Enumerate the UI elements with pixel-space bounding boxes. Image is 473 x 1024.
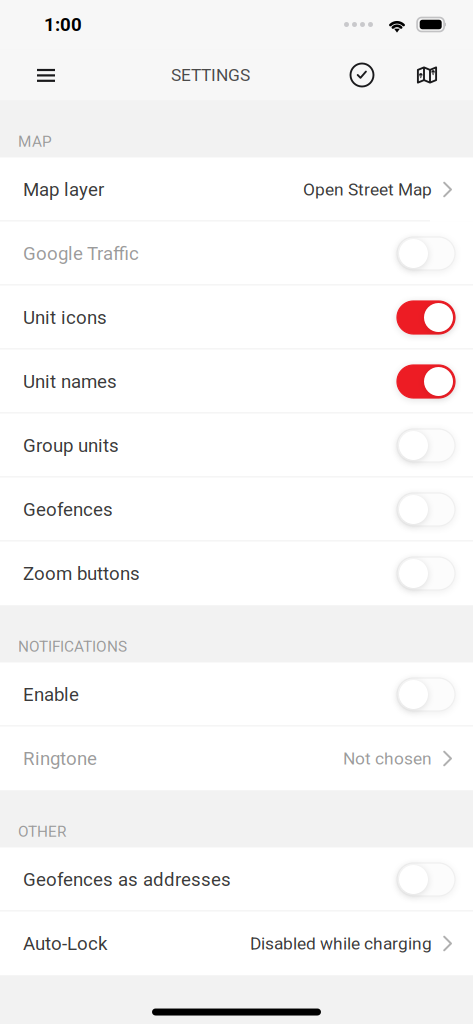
staticText: Map layer bbox=[23, 179, 104, 200]
staticText: NOTIFICATIONS bbox=[18, 637, 127, 655]
staticText: Open Street Map bbox=[303, 179, 432, 200]
staticText: Geofences as addresses bbox=[23, 869, 231, 890]
button[interactable]: Confirm bbox=[344, 49, 380, 100]
staticText: Ringtone bbox=[23, 748, 97, 769]
staticText: Google Traffic bbox=[23, 243, 139, 264]
staticText: Unit names bbox=[23, 371, 117, 392]
staticText: Zoom buttons bbox=[23, 563, 140, 584]
staticText: Disabled while charging bbox=[250, 933, 432, 954]
button[interactable]: Geofences bbox=[0, 477, 473, 541]
button[interactable]: Map layer bbox=[0, 157, 473, 221]
staticText: Geofences bbox=[23, 499, 113, 520]
staticText: Group units bbox=[23, 435, 119, 456]
staticText: Unit icons bbox=[23, 307, 107, 328]
staticText: MAP bbox=[18, 132, 52, 150]
button[interactable]: Zoom buttons bbox=[0, 541, 473, 605]
button[interactable]: Google Traffic bbox=[0, 221, 473, 285]
staticText: Not chosen bbox=[343, 748, 432, 769]
staticText: 1:00 bbox=[44, 14, 82, 35]
staticText: OTHER bbox=[18, 822, 66, 840]
button[interactable]: Map bbox=[411, 49, 443, 100]
button[interactable]: Unit names bbox=[0, 349, 473, 413]
button[interactable]: Auto-Lock bbox=[0, 911, 473, 975]
staticText: Auto-Lock bbox=[23, 933, 107, 954]
staticText: SETTINGS bbox=[171, 65, 250, 85]
button[interactable]: Unit icons bbox=[0, 285, 473, 349]
button[interactable]: Menu bbox=[23, 49, 69, 100]
staticText: Enable bbox=[23, 684, 79, 705]
button[interactable]: Ringtone bbox=[0, 726, 473, 790]
button[interactable]: Enable bbox=[0, 662, 473, 726]
button[interactable]: Group units bbox=[0, 413, 473, 477]
button[interactable]: Geofences as addresses bbox=[0, 847, 473, 911]
